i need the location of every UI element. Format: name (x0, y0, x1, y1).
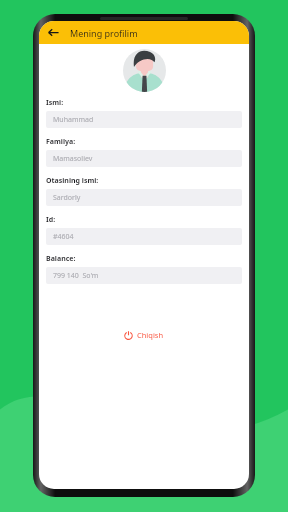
button[interactable]: #4604 (46, 228, 242, 245)
staticText: Mamasoliev (53, 154, 93, 164)
staticText: Chiqish (137, 330, 164, 340)
staticText: #4604 (53, 232, 74, 242)
staticText: Mening profilim (70, 27, 138, 39)
staticText: Ismi: (46, 98, 64, 108)
button[interactable]: Back (46, 25, 61, 40)
staticText: Sardorly (53, 193, 81, 203)
staticText: Muhammad (53, 115, 94, 125)
button[interactable]: Chiqish (118, 326, 170, 344)
button[interactable]: Mamasoliev (46, 150, 242, 167)
button[interactable]: 799 140 So'm (46, 267, 242, 284)
button[interactable]: Muhammad (46, 111, 242, 128)
staticText: Familya: (46, 137, 76, 147)
staticText: 799 140 So'm (53, 271, 99, 281)
staticText: Otasining ismi: (46, 176, 99, 186)
button[interactable]: Sardorly (46, 189, 242, 206)
staticText: Id: (46, 215, 56, 225)
staticText: Balance: (46, 254, 76, 264)
